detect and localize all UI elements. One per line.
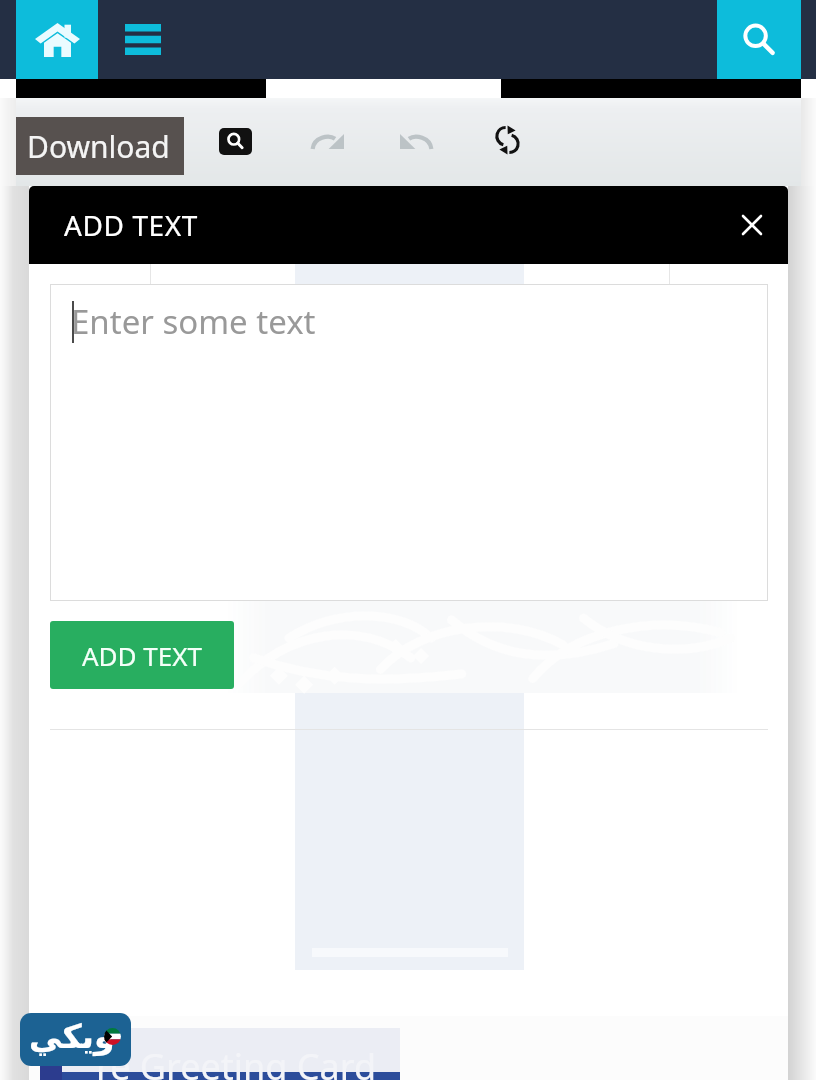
button[interactable]: Zoom — [207, 112, 263, 170]
staticText: re Greeting Card — [96, 1042, 377, 1080]
button[interactable]: Redo — [299, 112, 357, 170]
button[interactable]: Download — [16, 117, 184, 175]
staticText: Enter some text — [71, 299, 316, 344]
staticText: Download — [27, 126, 170, 167]
staticText: ADD TEXT — [82, 638, 202, 673]
button[interactable]: Close — [728, 201, 776, 249]
button[interactable]: Undo — [387, 112, 445, 170]
button[interactable]: ADD TEXT — [50, 621, 234, 689]
button[interactable]: Menu — [108, 0, 178, 79]
staticText: ADD TEXT — [64, 206, 198, 244]
button[interactable]: Wiki logo — [20, 1013, 131, 1066]
button[interactable]: Search — [717, 0, 801, 79]
staticText: ويكي — [29, 1017, 115, 1055]
button[interactable]: Home — [16, 0, 98, 79]
button[interactable]: Enter some text — [50, 284, 768, 601]
button[interactable]: Refresh — [478, 111, 536, 169]
